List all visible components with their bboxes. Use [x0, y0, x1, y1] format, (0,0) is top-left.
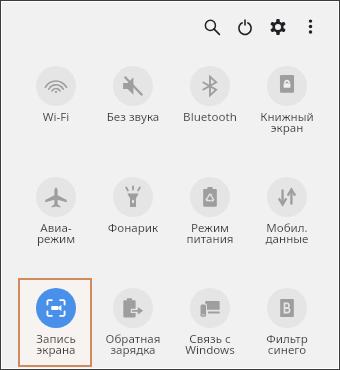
- button[interactable]: Книжный экран: [249, 56, 323, 145]
- button[interactable]: More options: [294, 10, 327, 43]
- button[interactable]: Без звука: [95, 56, 169, 145]
- staticText: Фильтр синего: [250, 331, 324, 358]
- staticText: Мобил. данные: [250, 220, 324, 247]
- staticText: Запись экрана: [19, 331, 93, 358]
- button[interactable]: Power: [228, 10, 261, 43]
- button[interactable]: Settings: [261, 10, 294, 43]
- button[interactable]: Bluetooth: [172, 56, 246, 145]
- button[interactable]: Запись экрана: [18, 278, 92, 367]
- button[interactable]: Обратная зарядка: [95, 278, 169, 367]
- staticText: Фонарик: [96, 220, 170, 236]
- staticText: Книжный экран: [250, 109, 324, 136]
- button[interactable]: Фонарик: [95, 167, 169, 256]
- button[interactable]: Wi-Fi: [18, 56, 92, 145]
- button[interactable]: Мобил. данные: [249, 167, 323, 256]
- staticText: Режим питания: [173, 220, 247, 247]
- staticText: Обратная зарядка: [96, 331, 170, 358]
- staticText: Wi-Fi: [19, 109, 93, 125]
- staticText: Без звука: [96, 109, 170, 125]
- staticText: Bluetooth: [173, 109, 247, 125]
- button[interactable]: Search: [195, 10, 228, 43]
- button[interactable]: Авиа- режим: [18, 167, 92, 256]
- button[interactable]: Фильтр синего: [249, 278, 323, 367]
- staticText: Связь с Windows: [173, 331, 247, 358]
- staticText: Авиа- режим: [19, 220, 93, 247]
- button[interactable]: Режим питания: [172, 167, 246, 256]
- button[interactable]: Связь с Windows: [172, 278, 246, 367]
